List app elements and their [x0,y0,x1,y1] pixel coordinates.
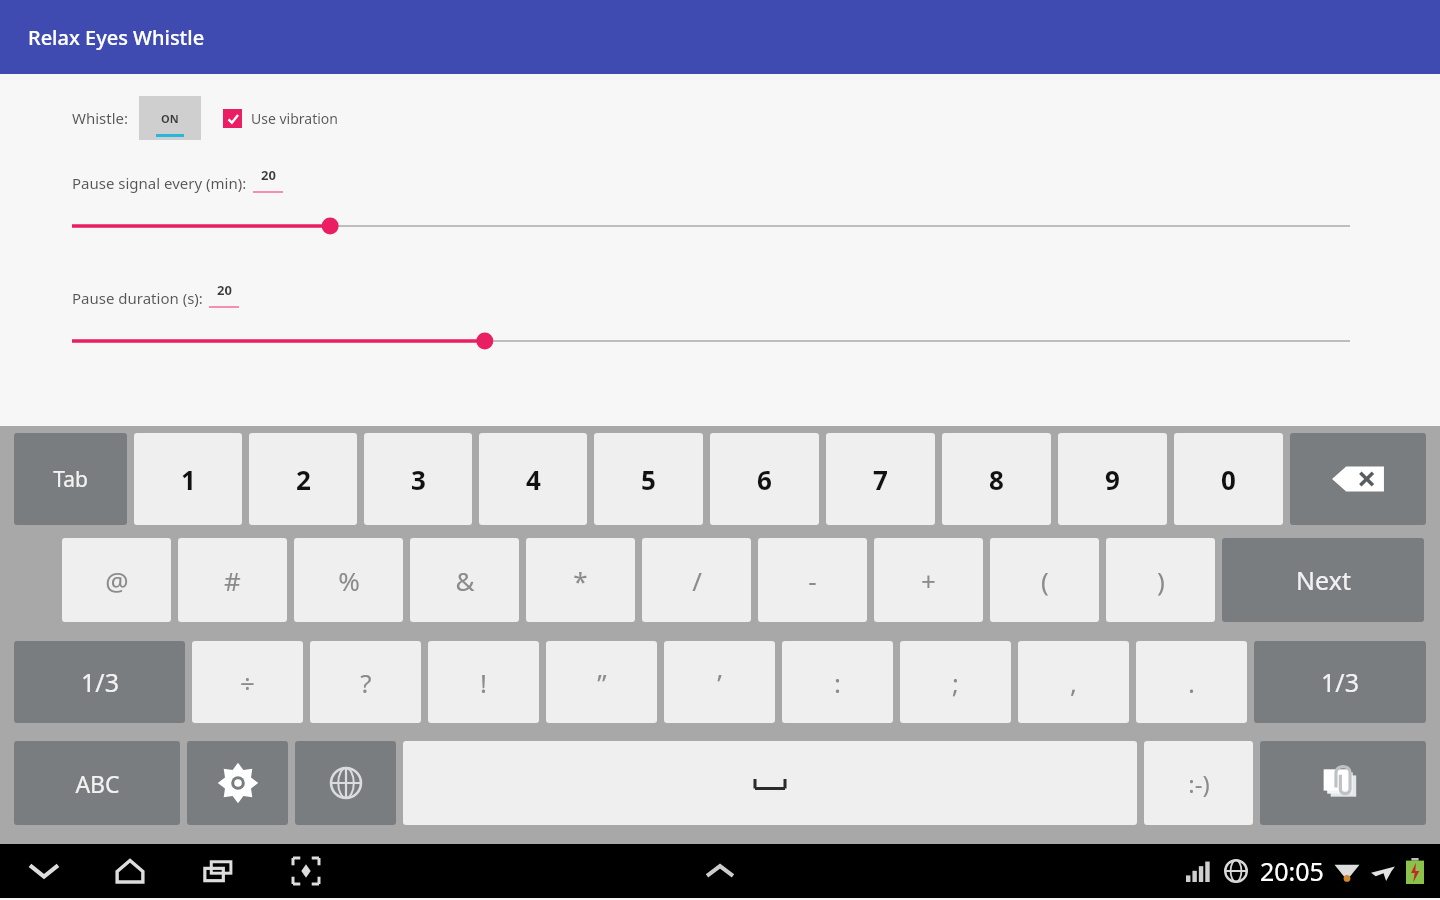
staticText: 7 [873,462,888,497]
button[interactable]: Screenshot [284,849,328,893]
button[interactable]: ? [310,641,421,723]
button[interactable]: ( [990,538,1099,622]
staticText: ” [597,665,607,700]
staticText: - [808,563,817,598]
staticText: 20 [261,166,276,184]
staticText: ÷ [240,665,255,700]
button[interactable]: , [1018,641,1129,723]
staticText: ON [161,111,179,126]
staticText: ? [360,665,372,700]
button[interactable]: : [782,641,893,723]
staticText: : [834,665,841,700]
button[interactable]: 4 [479,433,587,525]
button[interactable]: ” [546,641,657,723]
button[interactable]: ABC [14,741,180,825]
staticText: , [1070,665,1077,700]
staticText: 1 [181,462,196,497]
staticText: 1/3 [1321,665,1359,699]
staticText: 6 [757,462,772,497]
staticText: Relax Eyes Whistle [28,24,205,51]
staticText: ! [480,665,487,700]
staticText: & [455,563,475,598]
staticText: . [1188,665,1195,700]
button[interactable]: ’ [664,641,775,723]
button[interactable]: # [178,538,287,622]
button[interactable]: Hide keyboard [22,849,66,893]
button[interactable]: - [758,538,867,622]
button[interactable]: 5 [594,433,703,525]
staticText: Use vibration [251,109,338,128]
button[interactable]: Use vibration [223,109,338,128]
button[interactable]: & [410,538,519,622]
button[interactable]: Tab [14,433,127,525]
button[interactable]: / [642,538,751,622]
button[interactable]: Change language [295,741,396,825]
button[interactable]: @ [62,538,171,622]
button[interactable]: 7 [826,433,935,525]
button[interactable]: 1/3 [1254,641,1426,723]
button[interactable]: * [526,538,635,622]
button[interactable]: :-) [1144,741,1253,825]
staticText: 9 [1105,462,1120,497]
button[interactable]: ) [1106,538,1215,622]
button[interactable] [72,330,1350,352]
button[interactable]: Attach [1260,741,1426,825]
staticText: 20 [217,281,232,299]
button[interactable]: 8 [942,433,1051,525]
staticText: Next [1296,563,1351,597]
button[interactable]: Expand [698,849,742,893]
staticText: 20:05 [1260,854,1324,888]
staticText: :-) [1188,767,1210,800]
staticText: Tab [53,465,88,494]
staticText: Pause duration (s): [72,288,203,308]
button[interactable]: 1/3 [14,641,185,723]
button[interactable]: ON [139,96,201,140]
button[interactable]: 2 [249,433,357,525]
staticText: ’ [717,665,722,700]
staticText: 3 [411,462,426,497]
staticText: 4 [526,462,541,497]
staticText: 8 [989,462,1004,497]
button[interactable]: Recent apps [196,849,240,893]
button[interactable]: 9 [1058,433,1167,525]
button[interactable]: Backspace [1290,433,1426,525]
button[interactable]: 3 [364,433,472,525]
staticText: + [921,563,936,598]
staticText: ABC [75,768,120,799]
staticText: 1/3 [81,665,119,699]
staticText: ; [952,665,959,700]
staticText: # [224,563,241,598]
staticText: Pause signal every (min): [72,173,247,193]
button[interactable]: 1 [134,433,242,525]
button[interactable]: + [874,538,983,622]
button[interactable]: % [294,538,403,622]
staticText: 5 [641,462,656,497]
button[interactable]: Home [108,849,152,893]
staticText: ( [1041,563,1049,598]
staticText: * [573,563,588,598]
button[interactable]: ÷ [192,641,303,723]
button[interactable]: Space [403,741,1137,825]
staticText: 2 [296,462,311,497]
button[interactable]: 6 [710,433,819,525]
staticText: @ [105,563,129,598]
staticText: Whistle: [72,108,129,128]
staticText: ) [1157,563,1165,598]
button[interactable]: ! [428,641,539,723]
button[interactable]: ; [900,641,1011,723]
button[interactable]: Keyboard settings [187,741,288,825]
button[interactable] [72,215,1350,237]
staticText: 0 [1221,462,1236,497]
button[interactable]: 0 [1174,433,1283,525]
button[interactable]: Next [1222,538,1424,622]
button[interactable]: . [1136,641,1247,723]
staticText: % [338,563,360,598]
staticText: / [692,563,702,598]
